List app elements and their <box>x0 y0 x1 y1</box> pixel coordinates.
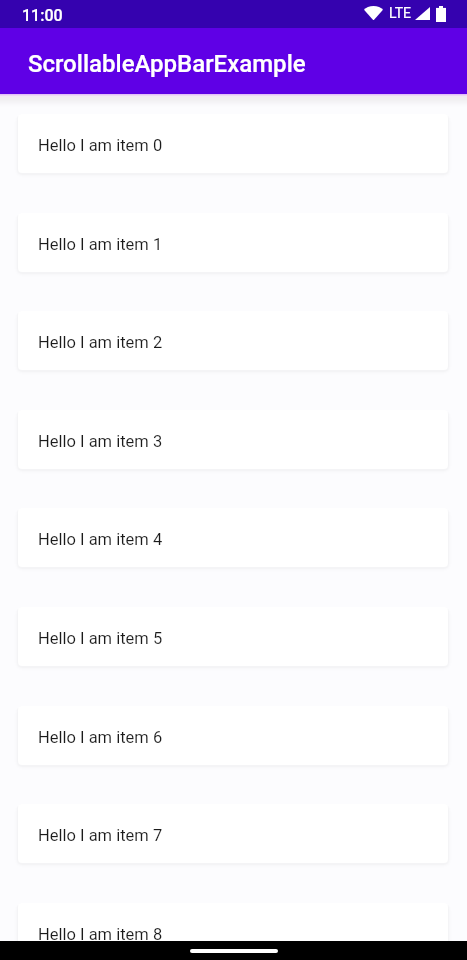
button[interactable]: Hello I am item 3 <box>18 410 448 469</box>
staticText: Hello I am item 5 <box>38 629 163 648</box>
staticText: LTE <box>389 5 411 21</box>
staticText: ScrollableAppBarExample <box>28 50 306 78</box>
staticText: Hello I am item 7 <box>38 826 163 845</box>
button[interactable]: Hello I am item 0 <box>18 114 448 173</box>
button[interactable]: Hello I am item 4 <box>18 508 448 567</box>
button[interactable]: Hello I am item 5 <box>18 607 448 666</box>
other: Mobile signal <box>415 7 430 20</box>
staticText: Hello I am item 1 <box>38 235 163 254</box>
staticText: Hello I am item 8 <box>38 925 163 941</box>
staticText: Hello I am item 0 <box>38 136 163 155</box>
other: Wi-Fi signal <box>364 5 383 20</box>
button[interactable]: Hello I am item 1 <box>18 213 448 272</box>
staticText: Hello I am item 3 <box>38 432 163 451</box>
staticText: Hello I am item 4 <box>38 530 163 549</box>
button[interactable]: Home <box>190 949 278 953</box>
staticText: Hello I am item 2 <box>38 333 163 352</box>
button[interactable]: Hello I am item 7 <box>18 804 448 863</box>
button[interactable]: Hello I am item 2 <box>18 311 448 370</box>
staticText: 11:00 <box>22 6 63 25</box>
other: Battery <box>436 6 446 22</box>
button[interactable]: Hello I am item 8 <box>18 903 448 941</box>
staticText: Hello I am item 6 <box>38 728 163 747</box>
button[interactable]: Hello I am item 6 <box>18 706 448 765</box>
